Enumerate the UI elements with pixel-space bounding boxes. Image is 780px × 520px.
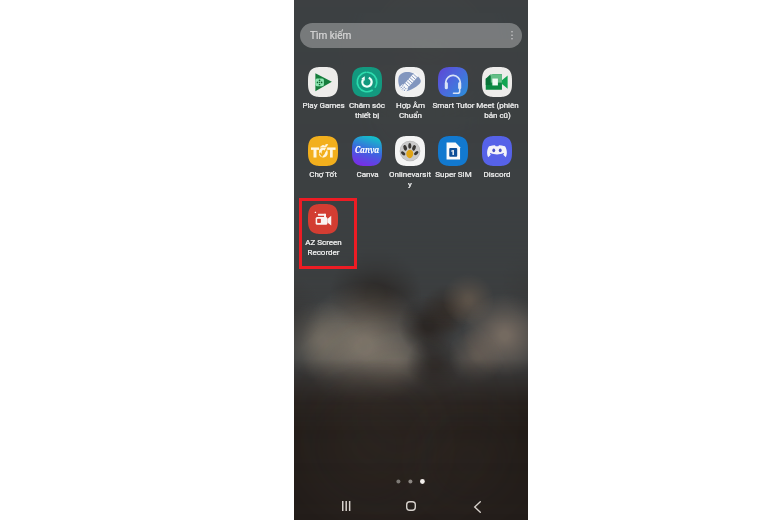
button[interactable]: Smart Tutor: [431, 67, 475, 110]
button[interactable]: Recents: [331, 491, 361, 520]
staticText: Smart Tutor: [432, 101, 475, 110]
staticText: Canva: [356, 170, 379, 179]
staticText: Chợ Tốt: [309, 170, 337, 179]
staticText: Discord: [483, 170, 511, 179]
button[interactable]: Onlinevarsit y: [388, 136, 432, 189]
staticText: Chăm sóc thiết bị: [349, 101, 385, 120]
staticText: Super SIM: [435, 170, 472, 179]
button[interactable]: Discord: [475, 136, 519, 179]
staticText: TỐT: [311, 145, 336, 160]
staticText: Meet (phiên bản cũ): [476, 101, 519, 120]
staticText: Onlinevarsit y: [389, 170, 431, 189]
staticText: Play Games: [302, 101, 345, 110]
button[interactable]: 1: [431, 136, 475, 179]
button[interactable]: Home: [396, 491, 426, 520]
button[interactable]: Play Games: [301, 67, 345, 110]
staticText: 1: [451, 149, 456, 157]
button[interactable]: Hợp Âm Chuẩn: [388, 67, 432, 120]
button[interactable]: AZ Screen Recorder: [301, 204, 345, 257]
staticText: Tìm kiếm: [310, 30, 352, 42]
button[interactable]: Tìm kiếm: [300, 23, 522, 48]
button[interactable]: Meet (phiên bản cũ): [475, 67, 519, 120]
button[interactable]: Chăm sóc thiết bị: [345, 67, 389, 120]
staticText: Hợp Âm Chuẩn: [396, 101, 425, 120]
button[interactable]: Canva: [345, 136, 389, 179]
button[interactable]: More options: [500, 23, 522, 48]
staticText: Canva: [355, 144, 380, 155]
button[interactable]: TỐT: [301, 136, 345, 179]
staticText: AZ Screen Recorder: [305, 238, 342, 257]
button[interactable]: Back: [462, 492, 492, 520]
